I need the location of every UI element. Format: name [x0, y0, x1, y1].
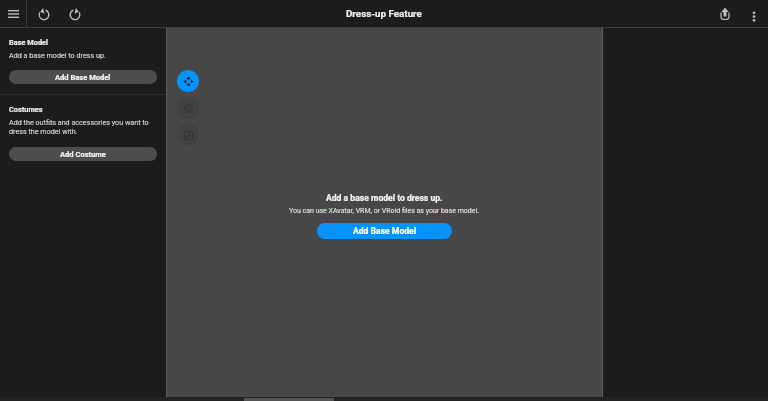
button[interactable]: Menu [0, 0, 26, 27]
staticText: Add the outfits and accessories you want… [9, 118, 157, 136]
staticText: Add Costume [60, 150, 106, 159]
button[interactable]: Rotate [177, 97, 199, 119]
staticText: Base Model [9, 38, 49, 47]
staticText: Dress-up Feature [346, 8, 422, 19]
staticText: Costumes [9, 105, 43, 114]
button[interactable]: Share [710, 0, 739, 27]
staticText: Add Base Model [55, 73, 111, 82]
staticText: You can use XAvatar, VRM, or VRoid files… [289, 207, 480, 215]
button[interactable]: Add Base Model [9, 70, 157, 84]
button[interactable]: Add Base Model [317, 223, 452, 239]
staticText: Add a base model to dress up. [326, 193, 443, 203]
staticText: Add Base Model [353, 226, 416, 236]
button[interactable]: Redo [60, 0, 90, 27]
button[interactable]: Move [177, 70, 199, 92]
button[interactable]: Scale [177, 124, 199, 146]
staticText: Add a base model to dress up. [9, 51, 106, 59]
button[interactable]: Add Costume [9, 147, 157, 161]
button[interactable]: Undo [27, 0, 60, 27]
button[interactable]: More options [739, 0, 768, 27]
